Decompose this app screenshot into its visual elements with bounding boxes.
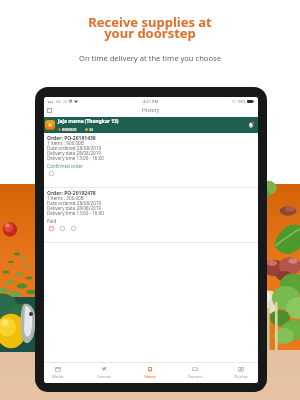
staticText: Receive supplies at your doorstep bbox=[88, 13, 212, 42]
staticText: 34 bbox=[89, 127, 94, 132]
button[interactable]: Market bbox=[44, 366, 72, 378]
button[interactable]: Open menu bbox=[47, 108, 52, 113]
staticText: Order: PO-20192478 bbox=[47, 190, 96, 197]
staticText: History bbox=[144, 374, 156, 378]
button[interactable]: Jaja mama (Thongkar 13) bbox=[44, 117, 258, 133]
staticText: Payment bbox=[188, 374, 202, 378]
staticText: Jaja mama (Thongkar 13) bbox=[58, 118, 119, 125]
button[interactable]: History bbox=[136, 366, 164, 378]
staticText: 4:21 PM bbox=[143, 99, 159, 104]
staticText: Order: PO-20191439 bbox=[47, 135, 96, 142]
staticText: 1 items : 900.00B Date ordered 28/08/201… bbox=[47, 140, 104, 161]
button[interactable]: Order action bbox=[59, 225, 66, 232]
staticText: 100% bbox=[237, 99, 246, 104]
button[interactable]: My shop bbox=[227, 366, 255, 378]
staticText: History bbox=[142, 106, 160, 113]
button[interactable]: Order action bbox=[70, 225, 77, 232]
staticText: Promote bbox=[97, 374, 111, 378]
staticText: BRONZE bbox=[62, 127, 77, 132]
button[interactable]: Order action bbox=[48, 225, 55, 232]
staticText: On time delivery at the time you choose bbox=[79, 53, 221, 63]
button[interactable]: Notifications bbox=[247, 121, 255, 129]
button[interactable]: Promote bbox=[90, 366, 118, 378]
staticText: 1 items : 300.00B Date ordered 28/08/201… bbox=[47, 195, 104, 216]
button[interactable]: Confirmed order bbox=[47, 163, 83, 169]
button[interactable]: Order action bbox=[48, 170, 55, 177]
staticText: My shop bbox=[234, 374, 248, 378]
staticText: Market bbox=[52, 374, 64, 378]
button[interactable]: Payment bbox=[181, 366, 209, 378]
staticText: AIS bbox=[56, 99, 62, 104]
button[interactable]: Paid bbox=[47, 218, 57, 224]
staticText: 4G bbox=[63, 99, 68, 104]
